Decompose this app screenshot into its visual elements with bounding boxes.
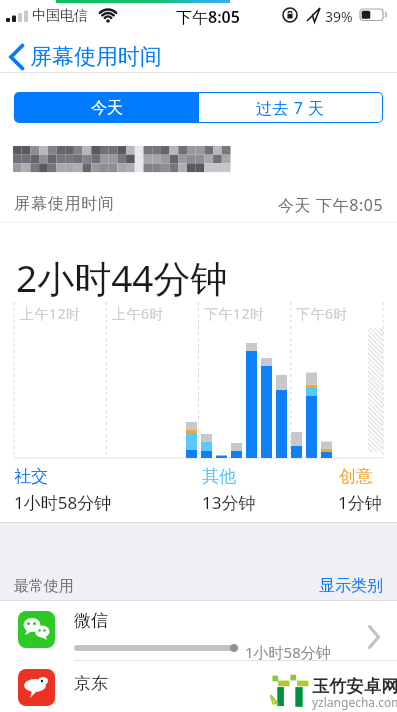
staticText: 1分钟 (338, 491, 382, 514)
staticText: 屏幕使用时间 (14, 194, 115, 214)
staticText: 1小时58分钟 (14, 491, 112, 514)
staticText: 今天 下午8:05 (278, 194, 384, 216)
staticText: 下午8:05 (176, 6, 240, 28)
staticText: 上午6时 (112, 304, 165, 323)
staticText: 下午12时 (204, 304, 265, 323)
button[interactable]: 过去 7 天 (199, 93, 382, 122)
staticText: 显示类别 (319, 576, 383, 596)
button[interactable]: 今天 (14, 92, 199, 123)
staticText: 其他 (202, 466, 236, 487)
staticText: 京东 (74, 673, 108, 694)
button[interactable]: 微信 (0, 601, 397, 660)
staticText: 下午6时 (296, 304, 349, 323)
staticText: 最常使用 (14, 577, 74, 596)
staticText: yzlangecha.com (312, 694, 397, 710)
staticText: 39% (325, 7, 353, 26)
staticText: 1小时58分钟 (245, 642, 331, 662)
staticText: 中国电信 (32, 7, 88, 25)
staticText: 过去 7 天 (256, 97, 325, 119)
staticText: 屏幕使用时间 (30, 43, 162, 71)
staticText: 社交 (14, 466, 48, 487)
staticText: 玉竹安卓网 (312, 676, 397, 697)
button[interactable]: 京东 (0, 661, 397, 712)
button[interactable]: 显示类别 (0, 576, 383, 596)
staticText: 2小时44分钟 (16, 252, 228, 303)
staticText: 今天 (91, 98, 123, 118)
staticText: 微信 (74, 610, 108, 631)
staticText: 13分钟 (202, 491, 256, 514)
staticText: 创意 (339, 466, 373, 487)
button[interactable]: 屏幕使用时间 (0, 36, 200, 70)
staticText: 上午12时 (20, 304, 81, 323)
